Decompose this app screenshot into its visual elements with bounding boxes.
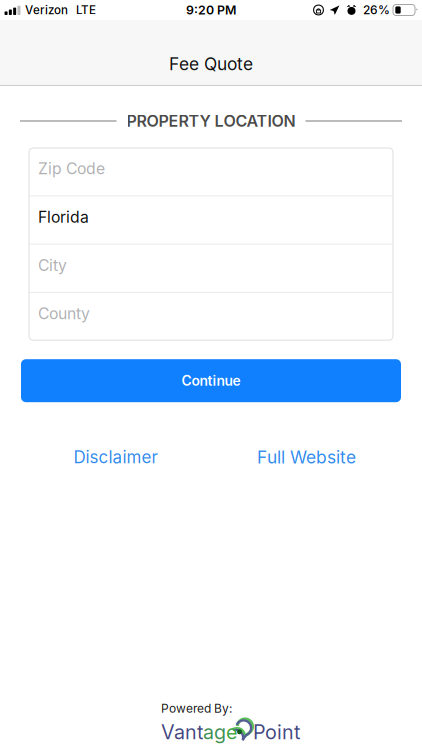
staticText: Vant (161, 720, 203, 744)
staticText: ag (203, 720, 226, 744)
staticText: Zip Code (38, 159, 105, 178)
staticText: Florida (38, 207, 89, 226)
staticText: Powered By: (161, 701, 232, 716)
staticText: 9:20 PM (186, 2, 236, 17)
button[interactable]: County (29, 293, 393, 340)
staticText: 26% (363, 3, 390, 17)
button[interactable]: Zip Code (29, 148, 393, 195)
staticText: e (226, 720, 237, 744)
button[interactable]: Disclaimer (20, 441, 211, 473)
staticText: Point (253, 720, 300, 744)
staticText: City (38, 256, 67, 275)
button[interactable]: Florida (29, 196, 393, 244)
staticText: PROPERTY LOCATION (126, 111, 295, 131)
button[interactable]: Full Website (211, 441, 402, 473)
button[interactable]: Continue (0, 359, 422, 402)
staticText: County (38, 304, 90, 323)
button[interactable]: City (29, 245, 393, 292)
staticText: Fee Quote (169, 53, 253, 74)
staticText: Continue (181, 372, 240, 389)
staticText: LTE (76, 3, 96, 17)
staticText: Disclaimer (73, 447, 157, 467)
staticText: Full Website (257, 447, 356, 468)
staticText: Verizon (25, 3, 68, 17)
